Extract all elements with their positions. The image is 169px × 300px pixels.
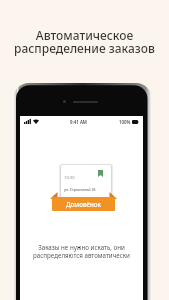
staticText: Домовёнок bbox=[66, 200, 101, 208]
staticText: 100% bbox=[119, 119, 131, 125]
staticText: Заказы не нужно искать, они bbox=[38, 243, 125, 251]
staticText: 10:30 bbox=[64, 175, 75, 181]
button[interactable]: Домовёнок bbox=[50, 192, 117, 211]
staticText: распределяются автоматически bbox=[33, 251, 130, 259]
staticText: Автоматическое распределение заказов bbox=[0, 27, 169, 56]
button[interactable]: 10:30 bbox=[61, 165, 111, 200]
staticText: 9:41 AM bbox=[70, 119, 87, 125]
staticText: ул. Строителей 36 bbox=[64, 187, 96, 192]
